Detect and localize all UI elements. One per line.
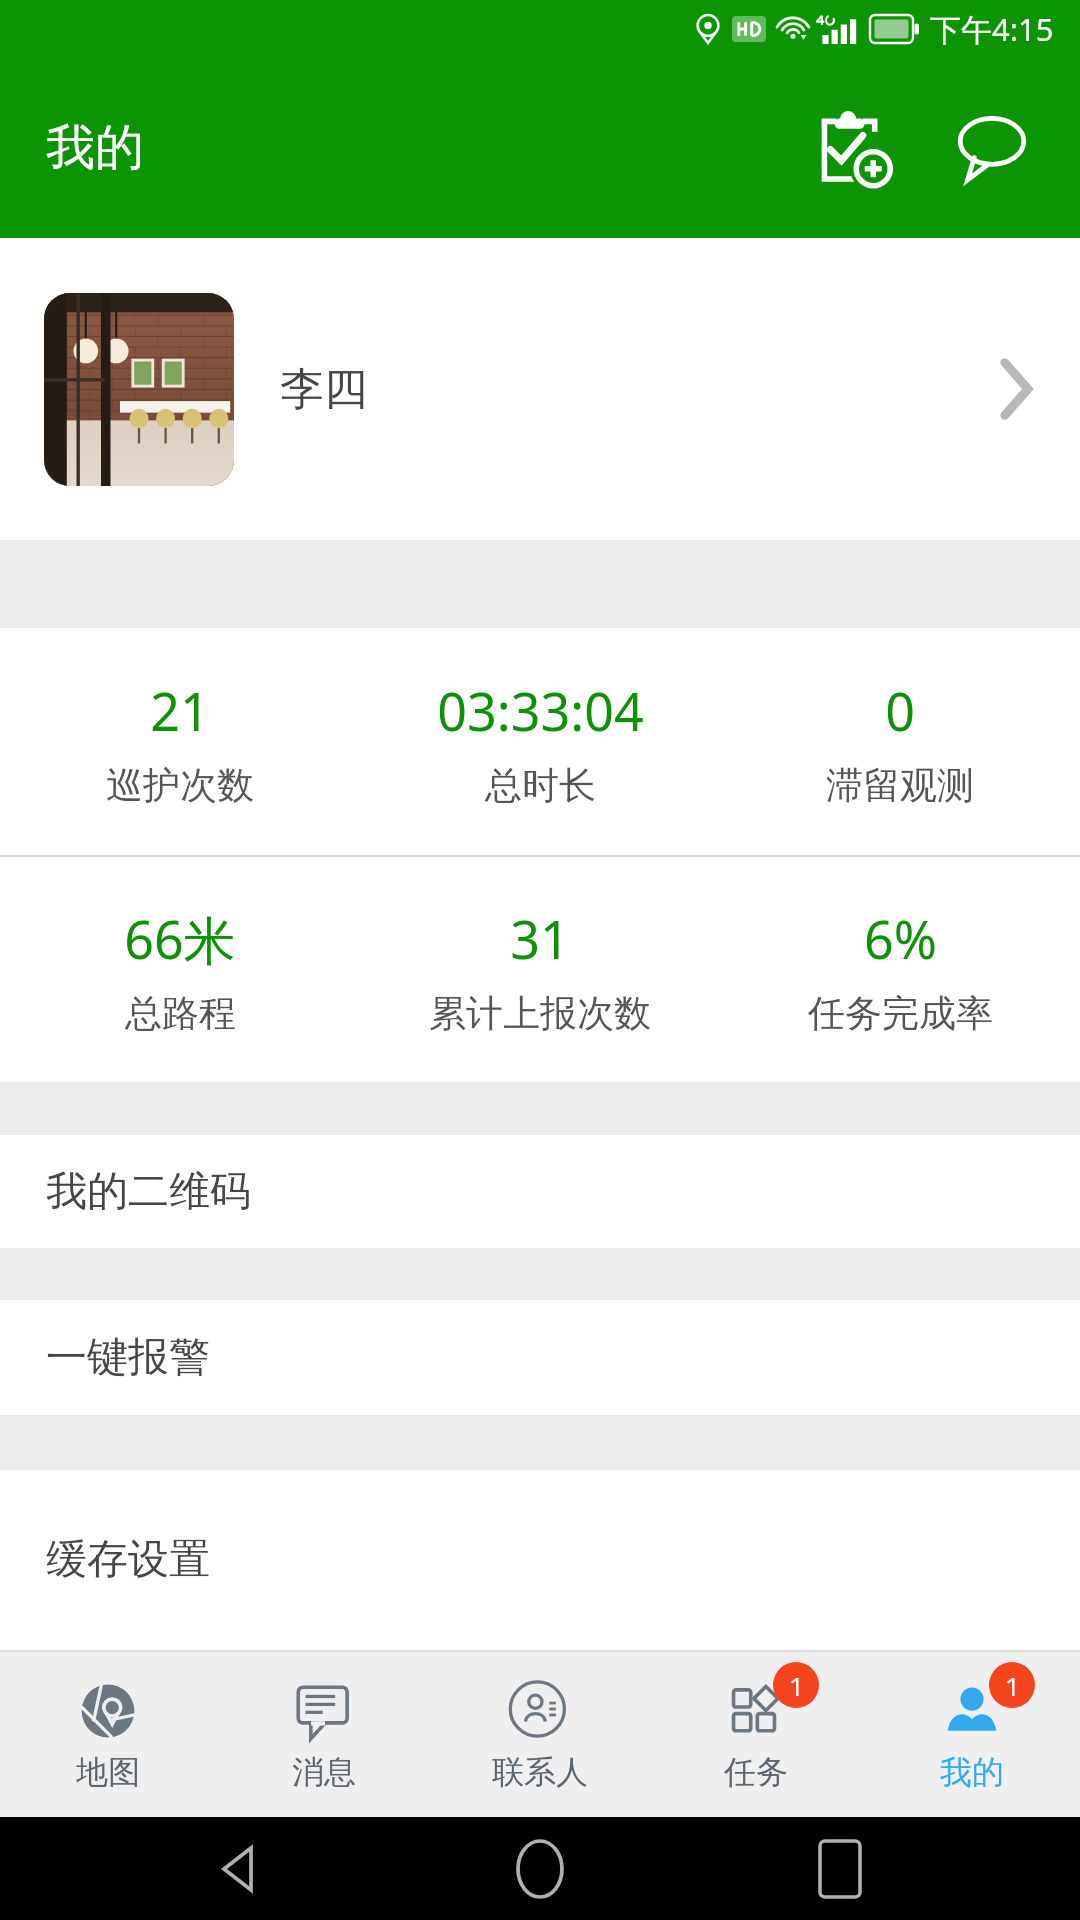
staticText: 累计上报次数: [429, 990, 651, 1037]
staticText: 1: [789, 1668, 804, 1703]
staticText: 滞留观测: [826, 762, 974, 809]
button[interactable]: 03:33:04: [360, 628, 720, 855]
button[interactable]: 一键报警: [0, 1300, 1080, 1415]
staticText: 李四: [280, 362, 368, 417]
staticText: 6%: [864, 903, 937, 974]
staticText: 消息: [292, 1752, 356, 1792]
button[interactable]: 1: [648, 1652, 864, 1817]
staticText: 1: [1005, 1668, 1020, 1703]
button[interactable]: 新建任务: [806, 100, 902, 196]
staticText: 缓存设置: [46, 1534, 210, 1586]
staticText: 地图: [76, 1752, 140, 1792]
button[interactable]: 返回: [180, 1817, 300, 1920]
button[interactable]: 最近任务: [780, 1817, 900, 1920]
button[interactable]: 6%: [720, 857, 1080, 1082]
button[interactable]: 李四: [0, 238, 1080, 540]
staticText: 我的: [46, 117, 144, 179]
button[interactable]: 1: [864, 1652, 1080, 1817]
staticText: 任务: [724, 1752, 788, 1792]
staticText: 任务完成率: [808, 990, 993, 1037]
staticText: 31: [510, 903, 570, 974]
staticText: 总路程: [125, 990, 236, 1037]
button[interactable]: 地图: [0, 1652, 216, 1817]
button[interactable]: 我的二维码: [0, 1135, 1080, 1248]
staticText: 联系人: [492, 1752, 588, 1792]
button[interactable]: 缓存设置: [0, 1470, 1080, 1650]
staticText: 21: [150, 675, 210, 746]
button[interactable]: 联系人: [432, 1652, 648, 1817]
button[interactable]: 0: [720, 628, 1080, 855]
button[interactable]: 66米: [0, 857, 360, 1082]
button[interactable]: 主屏幕: [480, 1817, 600, 1920]
staticText: 0: [885, 675, 915, 746]
staticText: 下午4:15: [930, 8, 1054, 50]
staticText: 03:33:04: [437, 675, 644, 746]
button[interactable]: 消息: [216, 1652, 432, 1817]
staticText: 一键报警: [46, 1332, 210, 1384]
button[interactable]: 21: [0, 628, 360, 855]
button[interactable]: 消息: [944, 100, 1040, 196]
staticText: 66米: [124, 903, 236, 974]
staticText: 总时长: [485, 762, 596, 809]
staticText: 我的: [940, 1752, 1004, 1792]
staticText: 巡护次数: [106, 762, 254, 809]
staticText: 我的二维码: [46, 1166, 251, 1218]
button[interactable]: 31: [360, 857, 720, 1082]
